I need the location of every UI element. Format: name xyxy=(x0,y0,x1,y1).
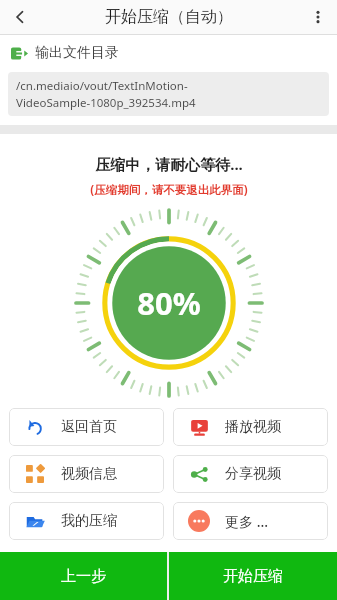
staticText: 分享视频 xyxy=(225,465,281,483)
button[interactable]: 更多 ... xyxy=(173,502,328,540)
staticText: 我的压缩 xyxy=(61,512,117,530)
button[interactable]: 视频信息 xyxy=(9,455,164,493)
staticText: 开始压缩（自动） xyxy=(105,7,233,27)
staticText: 播放视频 xyxy=(225,418,281,436)
button[interactable]: 返回首页 xyxy=(9,408,164,446)
button[interactable]: 分享视频 xyxy=(173,455,328,493)
staticText: 输出文件目录 xyxy=(35,44,119,62)
staticText: 返回首页 xyxy=(61,418,117,436)
button[interactable]: 播放视频 xyxy=(173,408,328,446)
button[interactable]: Back xyxy=(0,0,40,34)
staticText: /cn.mediaio/vout/TextInMotion- VideoSamp… xyxy=(16,78,196,110)
staticText: 更多 ... xyxy=(225,512,269,531)
button[interactable]: More options xyxy=(299,0,337,34)
staticText: (压缩期间，请不要退出此界面) xyxy=(90,182,248,198)
staticText: 压缩中，请耐心等待... xyxy=(95,154,243,174)
button[interactable]: 开始压缩 xyxy=(169,552,337,600)
staticText: 80% xyxy=(137,282,201,324)
button[interactable]: /cn.mediaio/vout/TextInMotion- VideoSamp… xyxy=(8,72,329,116)
button[interactable]: 上一步 xyxy=(0,552,167,600)
staticText: 上一步 xyxy=(61,567,106,586)
staticText: 视频信息 xyxy=(61,465,117,483)
button[interactable]: 我的压缩 xyxy=(9,502,164,540)
staticText: 开始压缩 xyxy=(223,567,283,586)
